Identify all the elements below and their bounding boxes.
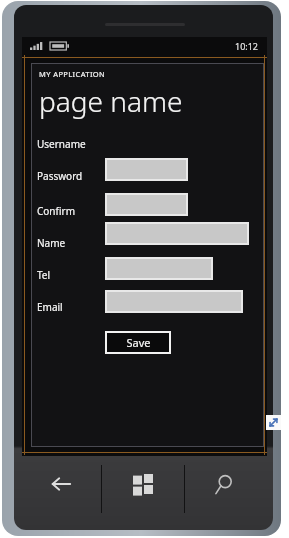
button[interactable]: Save: [105, 331, 171, 354]
staticText: page name: [39, 82, 183, 120]
staticText: Tel: [37, 268, 51, 282]
button[interactable]: Start: [102, 460, 184, 520]
staticText: Save: [126, 335, 151, 350]
staticText: 10:12: [235, 40, 259, 52]
button[interactable]: Resize: [266, 415, 281, 430]
staticText: Password: [37, 169, 83, 183]
staticText: Name: [37, 236, 66, 250]
staticText: MY APPLICATION: [39, 69, 106, 79]
staticText: Username: [37, 137, 86, 151]
button[interactable]: Search: [185, 460, 267, 520]
staticText: Email: [37, 300, 63, 314]
button[interactable]: Back: [20, 460, 101, 520]
staticText: Confirm: [37, 204, 76, 218]
